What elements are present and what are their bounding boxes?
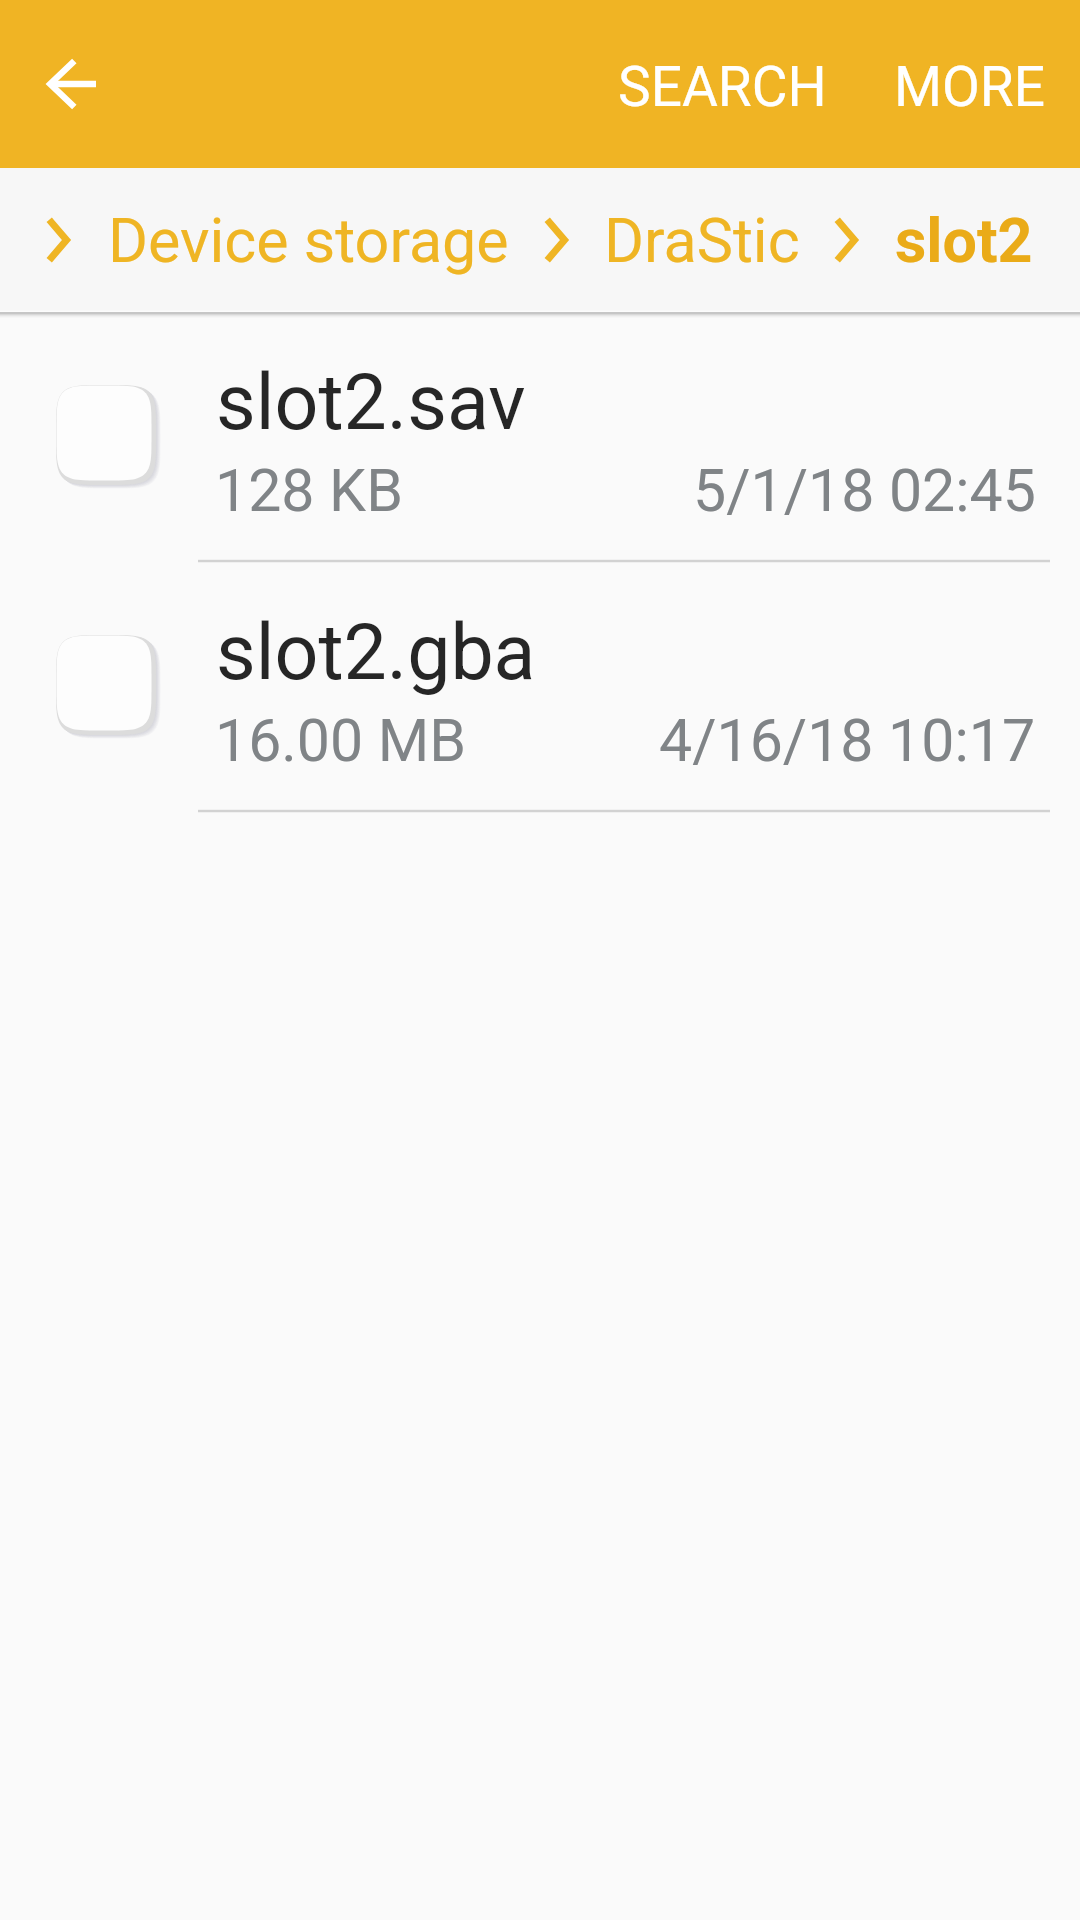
button[interactable]: Select slot2.sav: [0, 312, 1080, 561]
staticText: MORE: [894, 55, 1046, 119]
staticText: SEARCH: [618, 55, 827, 119]
button[interactable]: MORE: [877, 0, 1063, 168]
staticText: slot2.gba: [216, 608, 536, 698]
button[interactable]: Select slot2.gba: [36, 609, 176, 749]
button[interactable]: SEARCH: [610, 0, 834, 168]
staticText: 4/16/18 10:17: [659, 706, 1036, 775]
button[interactable]: slot2: [895, 168, 1033, 312]
staticText: 16.00 MB: [215, 706, 467, 775]
button[interactable]: Select slot2.gba: [0, 562, 1080, 811]
button[interactable]: Select slot2.sav: [36, 359, 176, 499]
button[interactable]: DraStic: [604, 168, 800, 312]
staticText: Device storage: [108, 205, 509, 276]
staticText: DraStic: [604, 205, 800, 276]
staticText: 5/1/18 02:45: [693, 456, 1036, 525]
staticText: slot2: [895, 205, 1033, 276]
button[interactable]: Device storage: [108, 168, 509, 312]
button[interactable]: Navigate up: [24, 0, 120, 168]
staticText: 128 KB: [215, 456, 403, 525]
staticText: slot2.sav: [216, 358, 526, 448]
